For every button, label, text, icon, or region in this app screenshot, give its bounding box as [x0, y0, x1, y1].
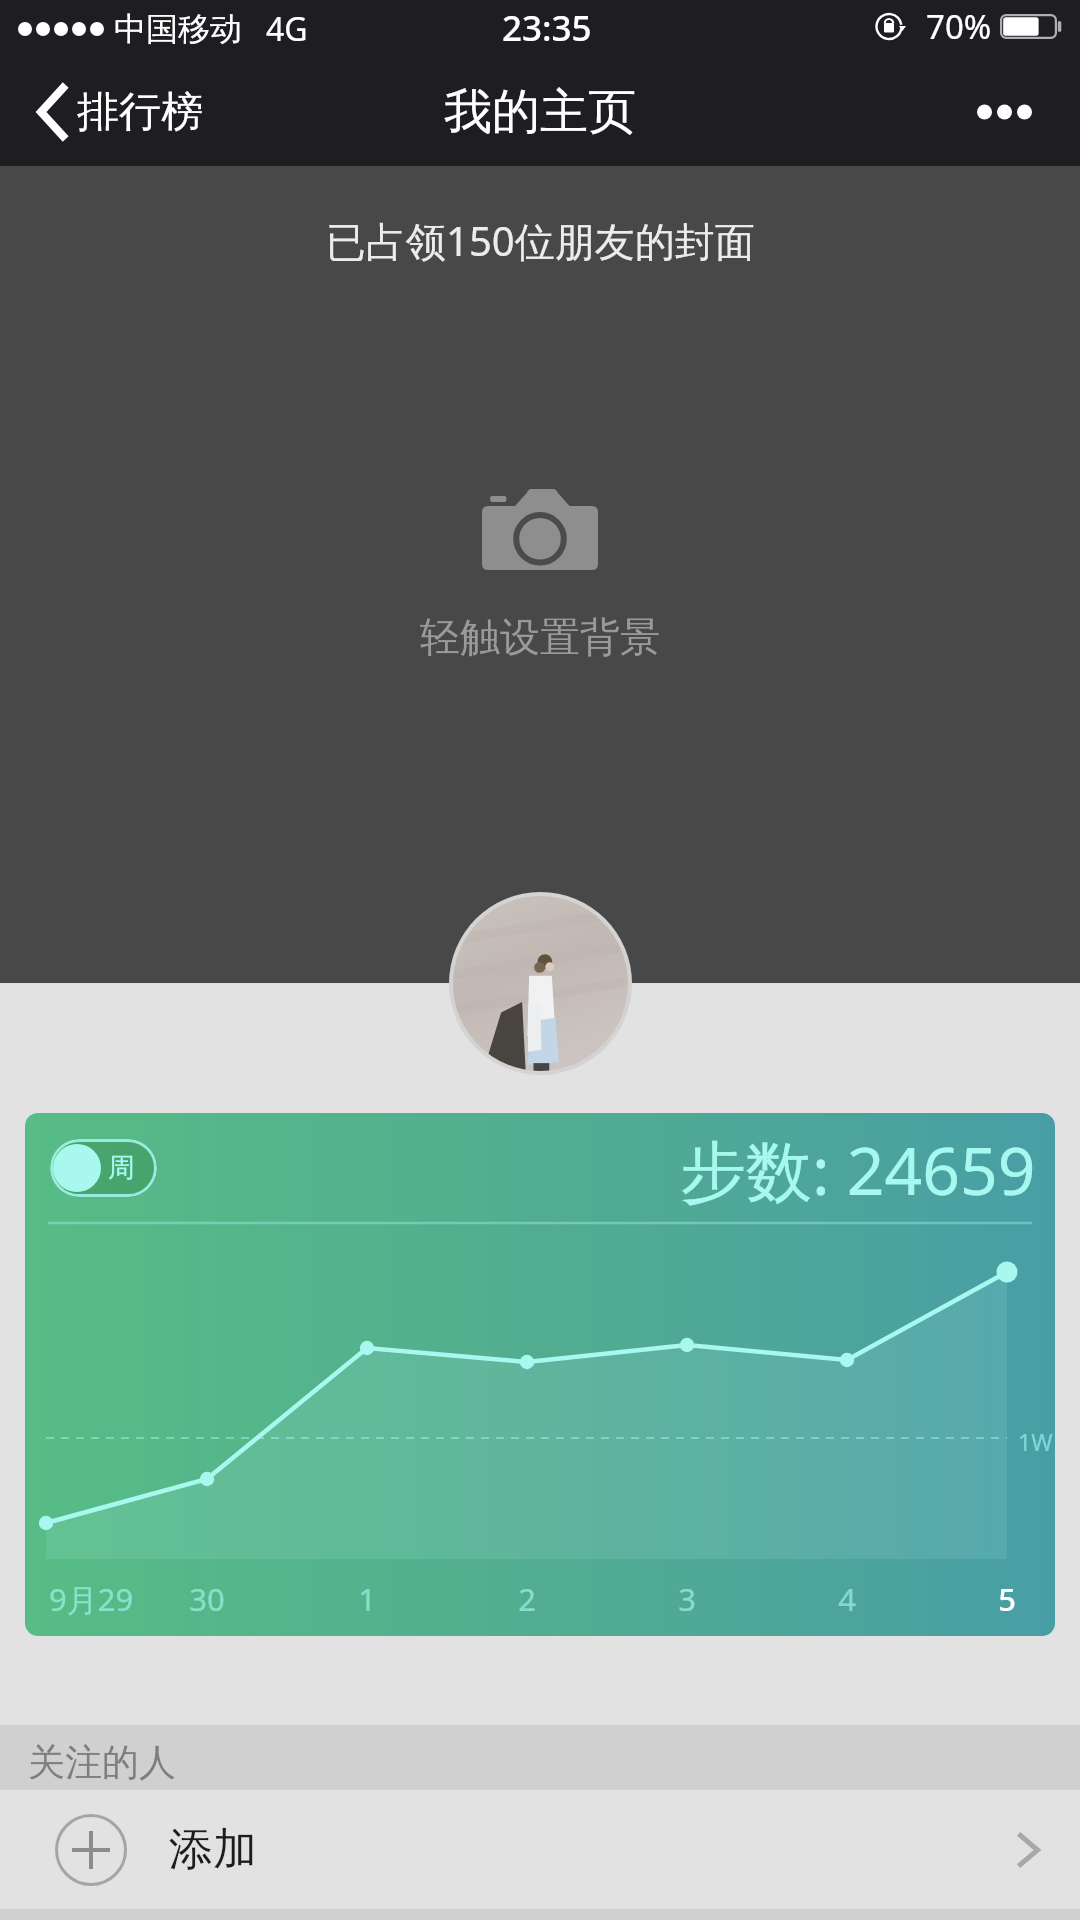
staticText: 3	[637, 1578, 737, 1620]
button[interactable]: 添加	[0, 1790, 1080, 1909]
button[interactable]: Profile photo	[449, 892, 632, 1075]
staticText: 30	[157, 1578, 257, 1620]
staticText: 已占领150位朋友的封面	[326, 213, 755, 268]
staticText: 9月29	[49, 1578, 134, 1620]
button[interactable]: More options	[953, 78, 1080, 146]
staticText: 4	[797, 1578, 897, 1620]
staticText: 23:35	[502, 4, 592, 52]
button[interactable]: 9月29	[25, 1113, 1055, 1636]
staticText: 我的主页	[444, 82, 636, 142]
staticText: 排行榜	[77, 86, 203, 139]
staticText: 中国移动	[114, 9, 242, 49]
staticText: 5	[957, 1578, 1055, 1620]
staticText: 步数: 24659	[680, 1124, 1036, 1214]
staticText: 1W	[1018, 1426, 1053, 1457]
staticText: 轻触设置背景	[420, 612, 660, 662]
staticText: 1	[317, 1578, 417, 1620]
staticText: 2	[477, 1578, 577, 1620]
staticText: 周	[108, 1151, 135, 1185]
button[interactable]: 排行榜	[0, 70, 227, 154]
staticText: 关注的人	[28, 1739, 176, 1786]
staticText: 添加	[169, 1822, 257, 1877]
button[interactable]: 周	[50, 1139, 157, 1197]
button[interactable]: 已占领150位朋友的封面	[0, 166, 1080, 983]
staticText: 70%	[926, 4, 992, 49]
staticText: 4G	[266, 7, 308, 51]
